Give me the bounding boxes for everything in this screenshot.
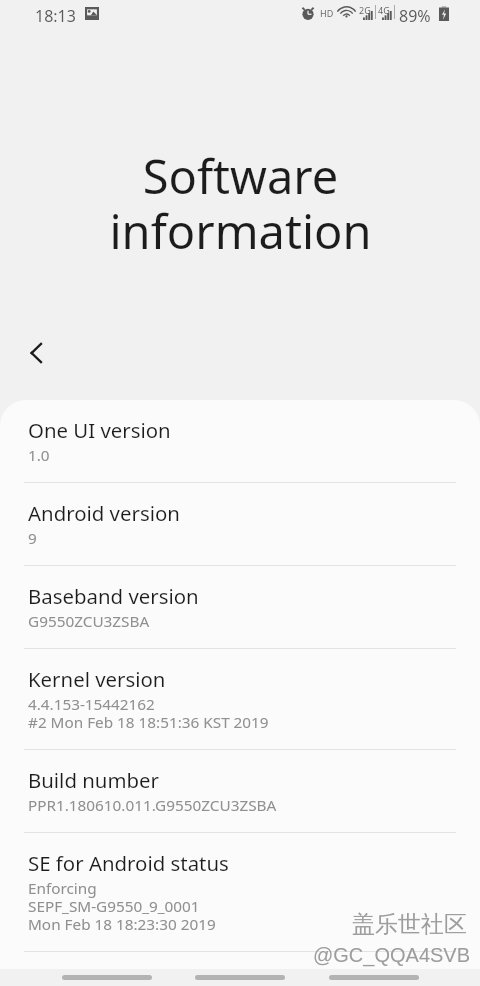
button[interactable]: Back — [329, 975, 419, 980]
staticText: Build number — [28, 765, 159, 794]
staticText: 1.0 — [28, 447, 50, 465]
staticText: PPR1.180610.011.G9550ZCU3ZSBA — [28, 797, 277, 815]
staticText: 18:13 — [35, 5, 76, 27]
staticText: 盖乐世社区 — [352, 910, 467, 939]
button[interactable]: Kernel version — [0, 649, 480, 750]
button[interactable]: Recents — [62, 975, 152, 980]
staticText: 9 — [28, 530, 37, 548]
staticText: 2G — [359, 4, 371, 16]
button[interactable]: Knox version — [0, 952, 480, 969]
staticText: Enforcing SEPF_SM-G9550_9_0001 Mon Feb 1… — [28, 880, 216, 934]
button[interactable]: Build number — [0, 750, 480, 833]
staticText: Software information — [109, 144, 372, 263]
button[interactable]: Android version — [0, 483, 480, 566]
staticText: 89% — [399, 5, 431, 27]
button[interactable]: SE for Android status — [0, 833, 480, 952]
staticText: @GC_QQA4SVB — [313, 944, 471, 966]
staticText: G9550ZCU3ZSBA — [28, 613, 150, 631]
staticText: Baseband version — [28, 581, 199, 610]
staticText: 4G — [378, 4, 390, 16]
staticText: One UI version — [28, 415, 171, 444]
staticText: 4.4.153-15442162 #2 Mon Feb 18 18:51:36 … — [28, 696, 269, 732]
staticText: Android version — [28, 498, 180, 527]
button[interactable]: Home — [195, 975, 285, 980]
staticText: HD — [320, 7, 334, 19]
button[interactable]: Navigate up — [12, 329, 60, 377]
button[interactable]: Baseband version — [0, 566, 480, 649]
button[interactable]: One UI version — [0, 400, 480, 483]
staticText: SE for Android status — [28, 848, 229, 877]
staticText: Kernel version — [28, 664, 166, 693]
